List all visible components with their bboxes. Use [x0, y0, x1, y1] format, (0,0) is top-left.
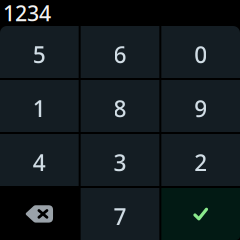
button[interactable]: 1 [0, 80, 79, 132]
button[interactable]: 3 [81, 134, 159, 186]
staticText: 0 [194, 39, 207, 69]
staticText: 6 [113, 39, 126, 69]
button[interactable]: Delete [0, 188, 79, 240]
staticText: 1 [33, 93, 46, 123]
staticText: 7 [113, 201, 126, 231]
staticText: 4 [33, 147, 46, 177]
button[interactable]: 6 [81, 26, 159, 78]
button[interactable]: 2 [161, 134, 240, 186]
button[interactable]: 5 [0, 26, 79, 78]
button[interactable]: 0 [161, 26, 240, 78]
button[interactable]: 8 [81, 80, 159, 132]
staticText: 5 [33, 39, 46, 69]
staticText: 3 [113, 147, 126, 177]
button[interactable]: Confirm [161, 188, 240, 240]
staticText: 8 [113, 93, 126, 123]
button[interactable]: 4 [0, 134, 79, 186]
button[interactable]: 9 [161, 80, 240, 132]
staticText: 1234 [3, 0, 51, 27]
staticText: 2 [194, 147, 207, 177]
staticText: 9 [194, 93, 207, 123]
button[interactable]: 7 [81, 188, 159, 240]
